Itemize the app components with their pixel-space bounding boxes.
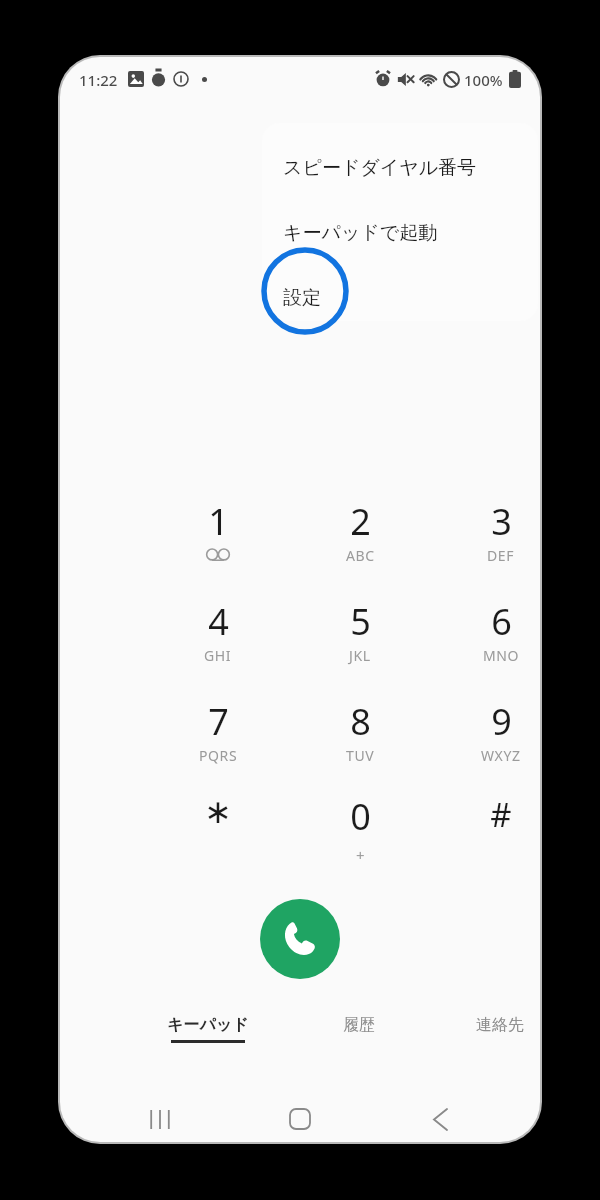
staticText: 2 xyxy=(350,497,371,546)
staticText: 3 xyxy=(491,497,512,546)
button[interactable]: キーパッドで起動 xyxy=(262,201,538,265)
staticText: # xyxy=(490,792,512,837)
staticText: 9 xyxy=(491,697,512,746)
staticText: WXYZ xyxy=(481,746,521,765)
staticText: TUV xyxy=(346,746,375,765)
staticText: 100% xyxy=(464,70,503,90)
button[interactable]: 設定 xyxy=(262,266,538,321)
button[interactable]: 1 xyxy=(158,497,278,593)
staticText: 6 xyxy=(491,597,512,646)
button[interactable]: 連絡先 xyxy=(441,1015,540,1067)
button[interactable]: 6 xyxy=(441,597,540,693)
button[interactable]: Home xyxy=(270,1089,330,1142)
staticText: キーパッドで起動 xyxy=(283,221,438,245)
button[interactable]: 0 xyxy=(300,792,420,888)
button[interactable]: スピードダイヤル番号 xyxy=(262,136,538,200)
staticText: ∗ xyxy=(204,792,232,830)
staticText: 11:22 xyxy=(79,70,118,90)
button[interactable]: Recents xyxy=(130,1089,190,1142)
staticText: 連絡先 xyxy=(476,1015,524,1035)
staticText: 5 xyxy=(350,597,371,646)
button[interactable]: 8 xyxy=(300,697,420,793)
button[interactable]: Call xyxy=(260,899,340,979)
staticText: + xyxy=(356,845,365,865)
button[interactable]: 4 xyxy=(158,597,278,693)
staticText: GHI xyxy=(204,646,232,665)
staticText: MNO xyxy=(483,646,520,665)
staticText: 1 xyxy=(208,497,229,546)
staticText: キーパッド xyxy=(167,1015,249,1035)
staticText: PQRS xyxy=(199,746,238,765)
button[interactable]: 2 xyxy=(300,497,420,593)
staticText: スピードダイヤル番号 xyxy=(283,156,477,180)
staticText: ABC xyxy=(346,546,375,565)
button[interactable]: 3 xyxy=(441,497,540,593)
button[interactable]: # xyxy=(441,792,540,888)
staticText: 4 xyxy=(208,597,229,646)
staticText: JKL xyxy=(349,646,371,665)
button[interactable]: ∗ xyxy=(158,792,278,888)
staticText: 0 xyxy=(350,792,371,841)
button[interactable]: 7 xyxy=(158,697,278,793)
staticText: 8 xyxy=(350,697,371,746)
staticText: 設定 xyxy=(283,286,321,310)
button[interactable]: 履歴 xyxy=(300,1015,418,1067)
staticText: 履歴 xyxy=(343,1015,375,1035)
button[interactable]: 5 xyxy=(300,597,420,693)
staticText: 7 xyxy=(208,697,229,746)
staticText: DEF xyxy=(487,546,515,565)
button[interactable]: Back xyxy=(410,1089,470,1142)
button[interactable]: 9 xyxy=(441,697,540,793)
button[interactable]: キーパッド xyxy=(149,1015,267,1067)
